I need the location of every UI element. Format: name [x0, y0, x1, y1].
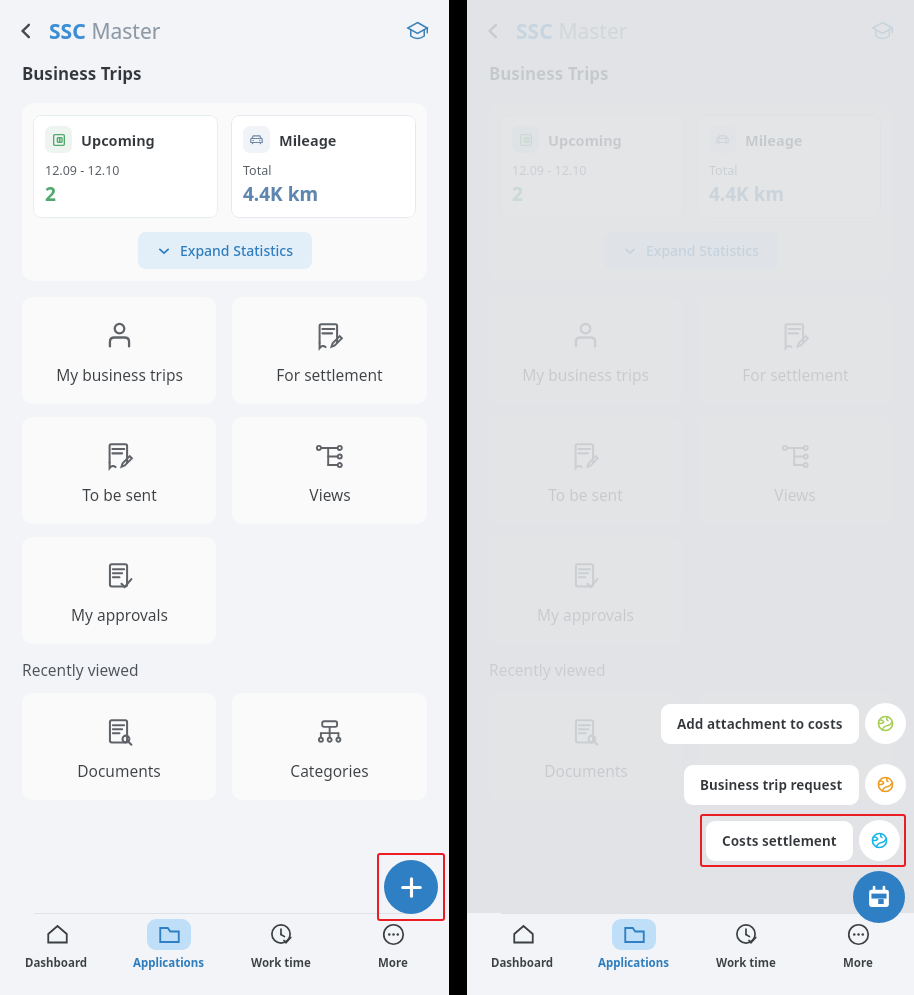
staticText: Work time: [251, 955, 311, 971]
button[interactable]: More: [802, 914, 914, 975]
button[interactable]: Categories: [698, 693, 892, 800]
button[interactable]: My business trips: [22, 297, 216, 404]
staticText: For settlement: [276, 364, 383, 385]
staticText: 2: [512, 181, 523, 207]
button[interactable]: Upcoming: [500, 115, 684, 218]
staticText: Documents: [544, 760, 628, 781]
button[interactable]: Add attachment to costs: [865, 703, 906, 744]
staticText: Recently viewed: [489, 659, 606, 680]
staticText: Applications: [598, 955, 670, 971]
button[interactable]: Back: [475, 13, 511, 49]
button[interactable]: Training: [865, 14, 899, 48]
button[interactable]: For settlement: [698, 297, 892, 404]
button[interactable]: Costs settlement: [706, 821, 853, 861]
button[interactable]: To be sent: [489, 417, 682, 524]
button[interactable]: My approvals: [489, 537, 682, 644]
button[interactable]: Documents: [489, 693, 682, 800]
staticText: Work time: [716, 955, 776, 971]
staticText: My approvals: [71, 604, 168, 625]
staticText: 12.09 - 12.10: [45, 162, 120, 179]
staticText: 12.09 - 12.10: [512, 162, 587, 179]
button[interactable]: Upcoming: [33, 115, 218, 218]
staticText: Costs settlement: [722, 832, 837, 850]
staticText: Business Trips: [22, 62, 142, 85]
staticText: Views: [774, 484, 816, 505]
staticText: Expand Statistics: [646, 241, 760, 260]
staticText: SSC: [49, 17, 86, 46]
staticText: Categories: [290, 760, 369, 781]
staticText: Categories: [756, 760, 835, 781]
staticText: My business trips: [522, 364, 649, 385]
staticText: Documents: [77, 760, 161, 781]
button[interactable]: Mileage: [697, 115, 881, 218]
button[interactable]: More: [337, 914, 449, 975]
staticText: My approvals: [537, 604, 634, 625]
button[interactable]: Documents: [22, 693, 216, 800]
button[interactable]: My business trips: [489, 297, 682, 404]
button[interactable]: Dashboard: [467, 914, 578, 975]
button[interactable]: Work time: [690, 914, 802, 975]
staticText: More: [843, 955, 873, 971]
button[interactable]: Views: [232, 417, 427, 524]
staticText: Master: [86, 17, 161, 46]
button[interactable]: Business trip request: [865, 764, 906, 805]
button[interactable]: Dashboard: [0, 914, 113, 975]
button[interactable]: Mileage: [231, 115, 416, 218]
staticText: Dashboard: [491, 955, 554, 971]
button[interactable]: Categories: [232, 693, 427, 800]
button[interactable]: Back: [8, 13, 44, 49]
staticText: Applications: [133, 955, 205, 971]
button[interactable]: Applications: [113, 914, 225, 975]
staticText: Business trip request: [700, 776, 843, 794]
staticText: Total: [709, 162, 738, 179]
staticText: SSC: [516, 17, 553, 46]
staticText: 4.4K km: [709, 181, 784, 207]
staticText: Master: [553, 17, 628, 46]
staticText: My business trips: [56, 364, 183, 385]
staticText: Add attachment to costs: [677, 715, 843, 733]
staticText: Views: [309, 484, 351, 505]
button[interactable]: Costs settlement: [859, 820, 900, 861]
staticText: 4.4K km: [243, 181, 318, 207]
staticText: To be sent: [548, 484, 623, 505]
staticText: Recently viewed: [22, 659, 139, 680]
staticText: Expand Statistics: [180, 241, 294, 260]
button[interactable]: Work time: [225, 914, 337, 975]
staticText: Mileage: [279, 130, 337, 150]
staticText: To be sent: [82, 484, 157, 505]
staticText: Upcoming: [81, 130, 155, 150]
staticText: Dashboard: [25, 955, 88, 971]
staticText: Business Trips: [489, 62, 609, 85]
button[interactable]: Add: [384, 860, 438, 914]
staticText: Upcoming: [548, 130, 622, 150]
button[interactable]: Training: [400, 14, 434, 48]
button[interactable]: Applications: [578, 914, 690, 975]
staticText: More: [378, 955, 408, 971]
button[interactable]: Business trip request: [684, 765, 859, 805]
button[interactable]: Expand Statistics: [138, 232, 312, 269]
button[interactable]: For settlement: [232, 297, 427, 404]
button[interactable]: My approvals: [22, 537, 216, 644]
button[interactable]: Add attachment to costs: [661, 704, 859, 744]
button[interactable]: To be sent: [22, 417, 216, 524]
staticText: 2: [45, 181, 56, 207]
button[interactable]: Calendar: [853, 871, 905, 923]
button[interactable]: Expand Statistics: [604, 232, 778, 269]
staticText: For settlement: [742, 364, 849, 385]
staticText: Total: [243, 162, 272, 179]
staticText: Mileage: [745, 130, 803, 150]
